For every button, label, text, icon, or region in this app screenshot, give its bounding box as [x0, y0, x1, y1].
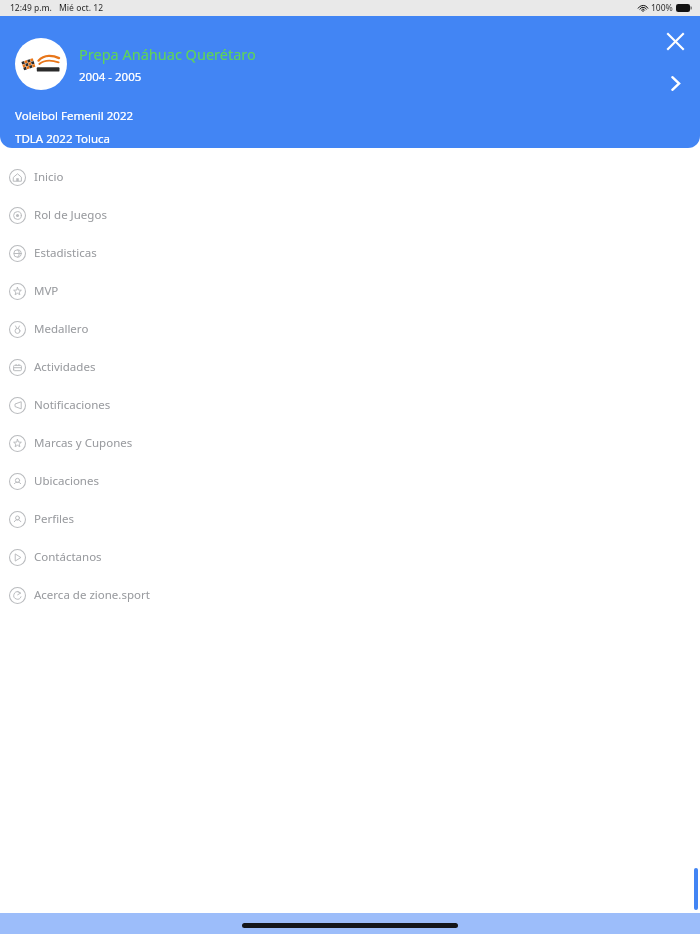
staticText: Estadisticas — [34, 245, 97, 261]
staticText: Ubicaciones — [34, 473, 99, 489]
staticText: 2004 - 2005 — [79, 69, 142, 85]
button[interactable]: Perfiles — [0, 500, 700, 538]
button[interactable]: Rol de Juegos — [0, 196, 700, 234]
button[interactable]: Marcas y Cupones — [0, 424, 700, 462]
button[interactable]: Acerca de zione.sport — [0, 576, 700, 614]
button[interactable]: Notificaciones — [0, 386, 700, 424]
staticText: Medallero — [34, 321, 89, 337]
staticText: Rol de Juegos — [34, 207, 107, 223]
button[interactable]: Medallero — [0, 310, 700, 348]
staticText: 12:49 p.m. — [10, 2, 52, 14]
staticText: Marcas y Cupones — [34, 435, 133, 451]
button[interactable]: Ver equipo — [660, 68, 690, 98]
button[interactable]: Ubicaciones — [0, 462, 700, 500]
button[interactable]: MVP — [0, 272, 700, 310]
button[interactable]: Actividades — [0, 348, 700, 386]
staticText: Perfiles — [34, 511, 75, 527]
button[interactable]: Contáctanos — [0, 538, 700, 576]
staticText: Acerca de zione.sport — [34, 587, 150, 603]
staticText: TDLA 2022 Toluca — [15, 131, 111, 147]
button[interactable]: Cerrar — [658, 24, 692, 58]
staticText: Prepa Anáhuac Querétaro — [79, 44, 256, 64]
staticText: 100% — [651, 2, 673, 14]
staticText: Contáctanos — [34, 549, 102, 565]
staticText: Actividades — [34, 359, 96, 375]
button[interactable]: Estadisticas — [0, 234, 700, 272]
staticText: Mié oct. 12 — [59, 2, 104, 14]
button[interactable]: Prepa Anáhuac Querétaro — [15, 38, 700, 90]
staticText: Inicio — [34, 169, 64, 185]
staticText: Voleibol Femenil 2022 — [15, 108, 134, 124]
staticText: Notificaciones — [34, 397, 111, 413]
staticText: MVP — [34, 283, 59, 299]
button[interactable]: Inicio — [0, 158, 700, 196]
